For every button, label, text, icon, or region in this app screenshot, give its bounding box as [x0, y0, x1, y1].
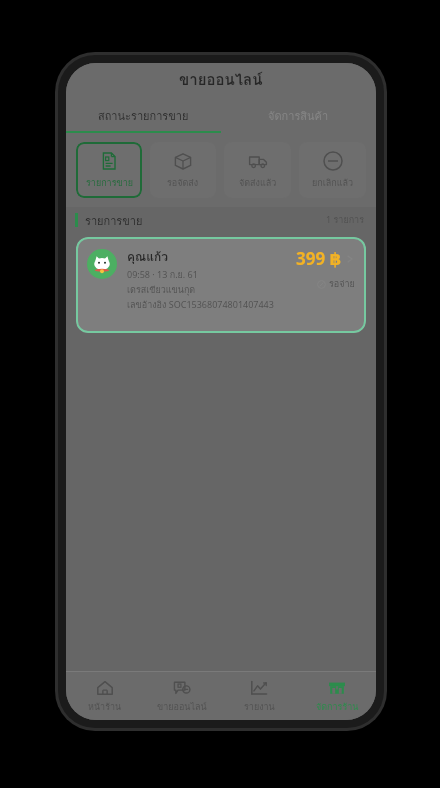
button[interactable]: Shipped [224, 142, 291, 198]
staticText: รอจ่าย [329, 277, 355, 291]
other: Sell online [173, 679, 191, 697]
staticText: ขายออนไลน์ [157, 700, 207, 714]
button[interactable]: Storefront home [66, 672, 143, 720]
staticText: 1 รายการ [326, 213, 364, 227]
staticText: สถานะรายการขาย [98, 107, 189, 124]
staticText: จัดการสินค้า [268, 107, 329, 124]
staticText: รายการขาย [85, 212, 143, 229]
staticText: เดรสเขียวแขนกุด [127, 283, 196, 297]
staticText: ยกเลิกแล้ว [312, 176, 354, 190]
staticText: จัดการร้าน [316, 700, 359, 714]
staticText: 09:58 · 13 ก.ย. 61 [127, 268, 198, 282]
staticText: รอจัดส่ง [167, 176, 199, 190]
staticText: จัดส่งแล้ว [239, 176, 277, 190]
staticText: คุณแก้ว [127, 247, 168, 266]
button[interactable]: สถานะรายการขาย [66, 97, 221, 133]
button[interactable]: Sell online [143, 672, 220, 720]
other: Pending shipment [173, 151, 193, 171]
staticText: เลขอ้างอิง SOC15368074801407443 [127, 298, 274, 312]
button[interactable]: จัดการสินค้า [221, 97, 376, 133]
button[interactable]: Reports [220, 672, 298, 720]
other: Reports [250, 679, 268, 697]
other: Manage store [328, 679, 346, 697]
button[interactable]: Orders [76, 142, 142, 198]
other: Orders [99, 151, 119, 171]
button[interactable]: Manage store [298, 672, 376, 720]
button[interactable]: คุณแก้ว [76, 237, 366, 333]
other: Storefront home [96, 679, 114, 697]
button[interactable]: Pending shipment [150, 142, 216, 198]
staticText: ขายออนไลน์ [179, 68, 263, 92]
staticText: รายงาน [244, 700, 275, 714]
staticText: รายการขาย [86, 176, 133, 190]
other: Cancelled [323, 151, 343, 171]
staticText: 399 ฿ [296, 247, 342, 270]
staticText: หน้าร้าน [88, 700, 122, 714]
button[interactable]: Cancelled [299, 142, 366, 198]
other: Shipped [248, 151, 268, 171]
